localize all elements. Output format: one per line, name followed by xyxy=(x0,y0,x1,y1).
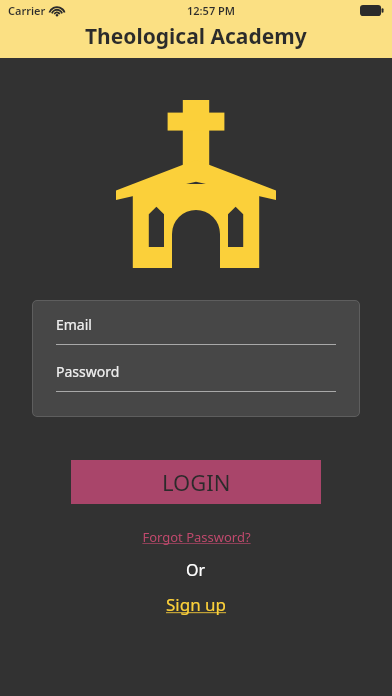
staticText: Password xyxy=(56,362,120,381)
staticText: LOGIN xyxy=(162,467,231,497)
staticText: Or xyxy=(186,559,206,581)
button[interactable]: Email xyxy=(56,300,336,345)
button[interactable]: Password xyxy=(56,345,336,392)
button[interactable]: Forgot Password? xyxy=(136,526,257,548)
staticText: Email xyxy=(56,315,92,334)
other: Church logo xyxy=(116,100,276,268)
staticText: Sign up xyxy=(166,593,227,616)
button[interactable]: Sign up xyxy=(160,591,233,618)
staticText: Theological Academy xyxy=(85,22,307,51)
staticText: Forgot Password? xyxy=(142,528,251,546)
staticText: Carrier xyxy=(8,3,46,18)
staticText: 12:57 PM xyxy=(187,3,236,18)
button[interactable]: LOGIN xyxy=(71,460,321,504)
